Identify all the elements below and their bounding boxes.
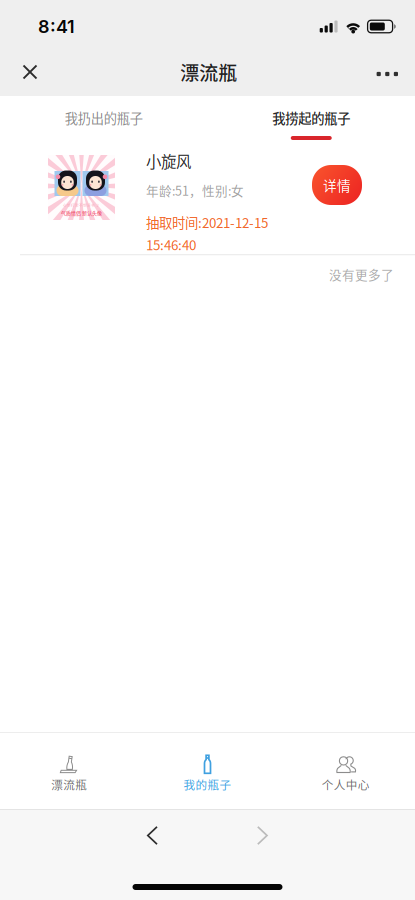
staticText: 年龄:51，性别:女 xyxy=(146,181,244,199)
staticText: 气质情侣 新认头像 xyxy=(61,209,102,216)
staticText: 我的瓶子 xyxy=(183,776,231,793)
staticText: 详情 xyxy=(323,175,351,195)
button[interactable]: Close xyxy=(9,50,51,94)
button[interactable]: 我的瓶子 xyxy=(138,754,277,793)
button[interactable]: Forward xyxy=(257,826,268,845)
staticText: 漂流瓶 xyxy=(51,776,87,793)
button[interactable]: 我扔出的瓶子 xyxy=(0,96,207,149)
staticText: 小旋风 xyxy=(146,150,191,172)
button[interactable]: 个人中心 xyxy=(277,754,415,793)
staticText: 个人中心 xyxy=(322,776,370,793)
button[interactable]: 漂流瓶 xyxy=(0,754,138,793)
staticText: 漂流瓶 xyxy=(180,58,237,86)
button[interactable]: 详情 xyxy=(312,165,362,205)
staticText: 15:46:40 xyxy=(146,235,196,254)
staticText: 我捞起的瓶子 xyxy=(272,108,350,127)
button[interactable]: 我捞起的瓶子 xyxy=(207,96,415,149)
button[interactable]: More xyxy=(367,50,408,94)
staticText: 心想打架不想读书 ♪ xyxy=(63,202,100,208)
staticText: 没有更多了 xyxy=(329,265,394,283)
staticText: 我扔出的瓶子 xyxy=(65,108,143,127)
staticText: 8:41 xyxy=(38,16,75,37)
staticText: 抽取时间:2021-12-15 xyxy=(146,212,268,232)
button[interactable]: Back xyxy=(147,826,158,845)
